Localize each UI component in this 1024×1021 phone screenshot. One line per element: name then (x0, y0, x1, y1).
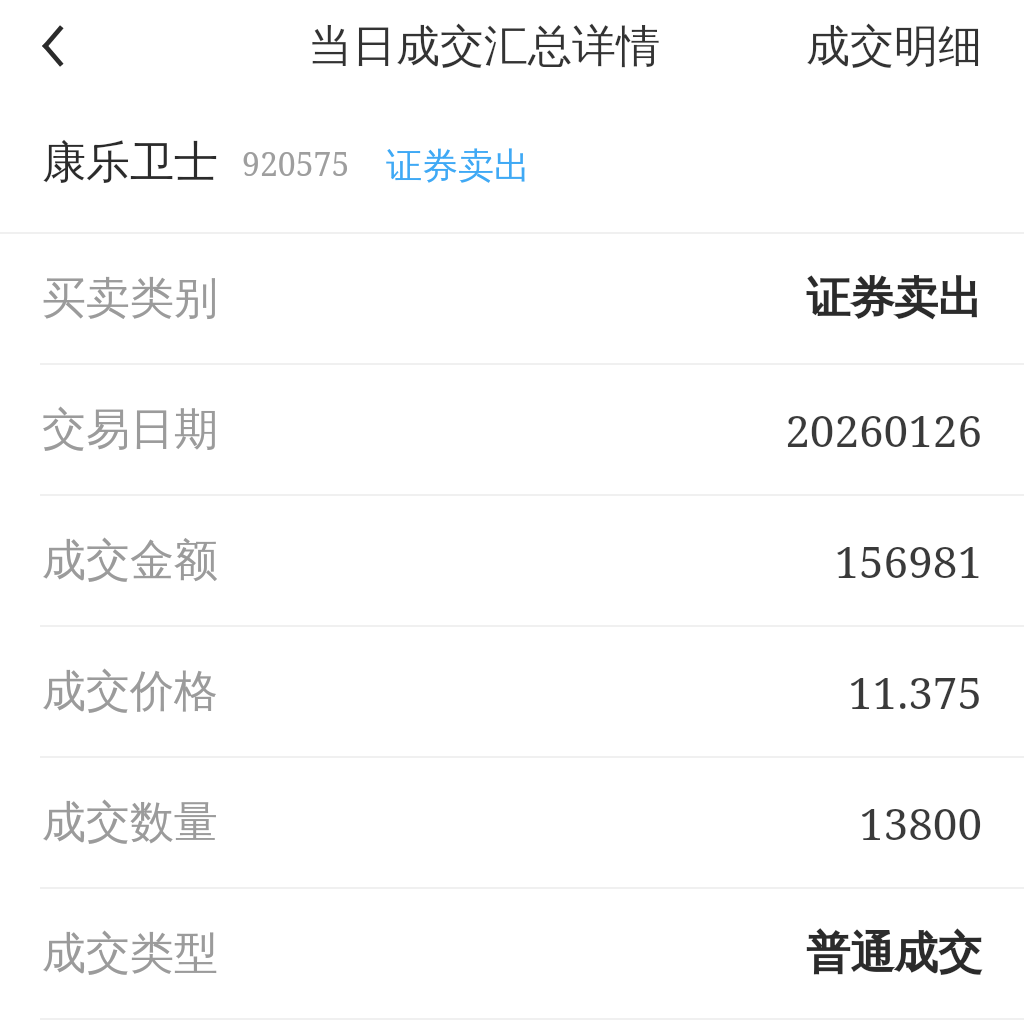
button[interactable]: 成交金额 (0, 496, 1024, 625)
button[interactable]: 康乐卫士 (0, 92, 1024, 232)
button[interactable]: 成交类型 (0, 889, 1024, 1018)
button[interactable]: 交易日期 (0, 365, 1024, 494)
staticText: 13800 (859, 793, 982, 853)
staticText: 920575 (242, 142, 350, 186)
staticText: 康乐卫士 (42, 135, 218, 190)
staticText: 成交金额 (42, 533, 218, 588)
staticText: 当日成交汇总详情 (308, 19, 660, 74)
button[interactable]: 成交价格 (0, 627, 1024, 756)
staticText: 证券卖出 (806, 271, 982, 326)
staticText: 156981 (834, 531, 982, 591)
staticText: 买卖类别 (42, 271, 218, 326)
button[interactable]: 成交数量 (0, 758, 1024, 887)
staticText: 成交明细 (806, 19, 982, 74)
staticText: 11.375 (848, 662, 982, 722)
staticText: 成交数量 (42, 795, 218, 850)
button[interactable]: 成交明细 (782, 0, 1024, 92)
staticText: 成交价格 (42, 664, 218, 719)
staticText: 20260126 (785, 400, 982, 460)
staticText: 证券卖出 (386, 143, 530, 188)
staticText: 交易日期 (42, 402, 218, 457)
staticText: 普通成交 (806, 926, 982, 981)
staticText: 成交类型 (42, 926, 218, 981)
button[interactable]: 买卖类别 (0, 234, 1024, 363)
button[interactable]: Back (0, 0, 110, 92)
